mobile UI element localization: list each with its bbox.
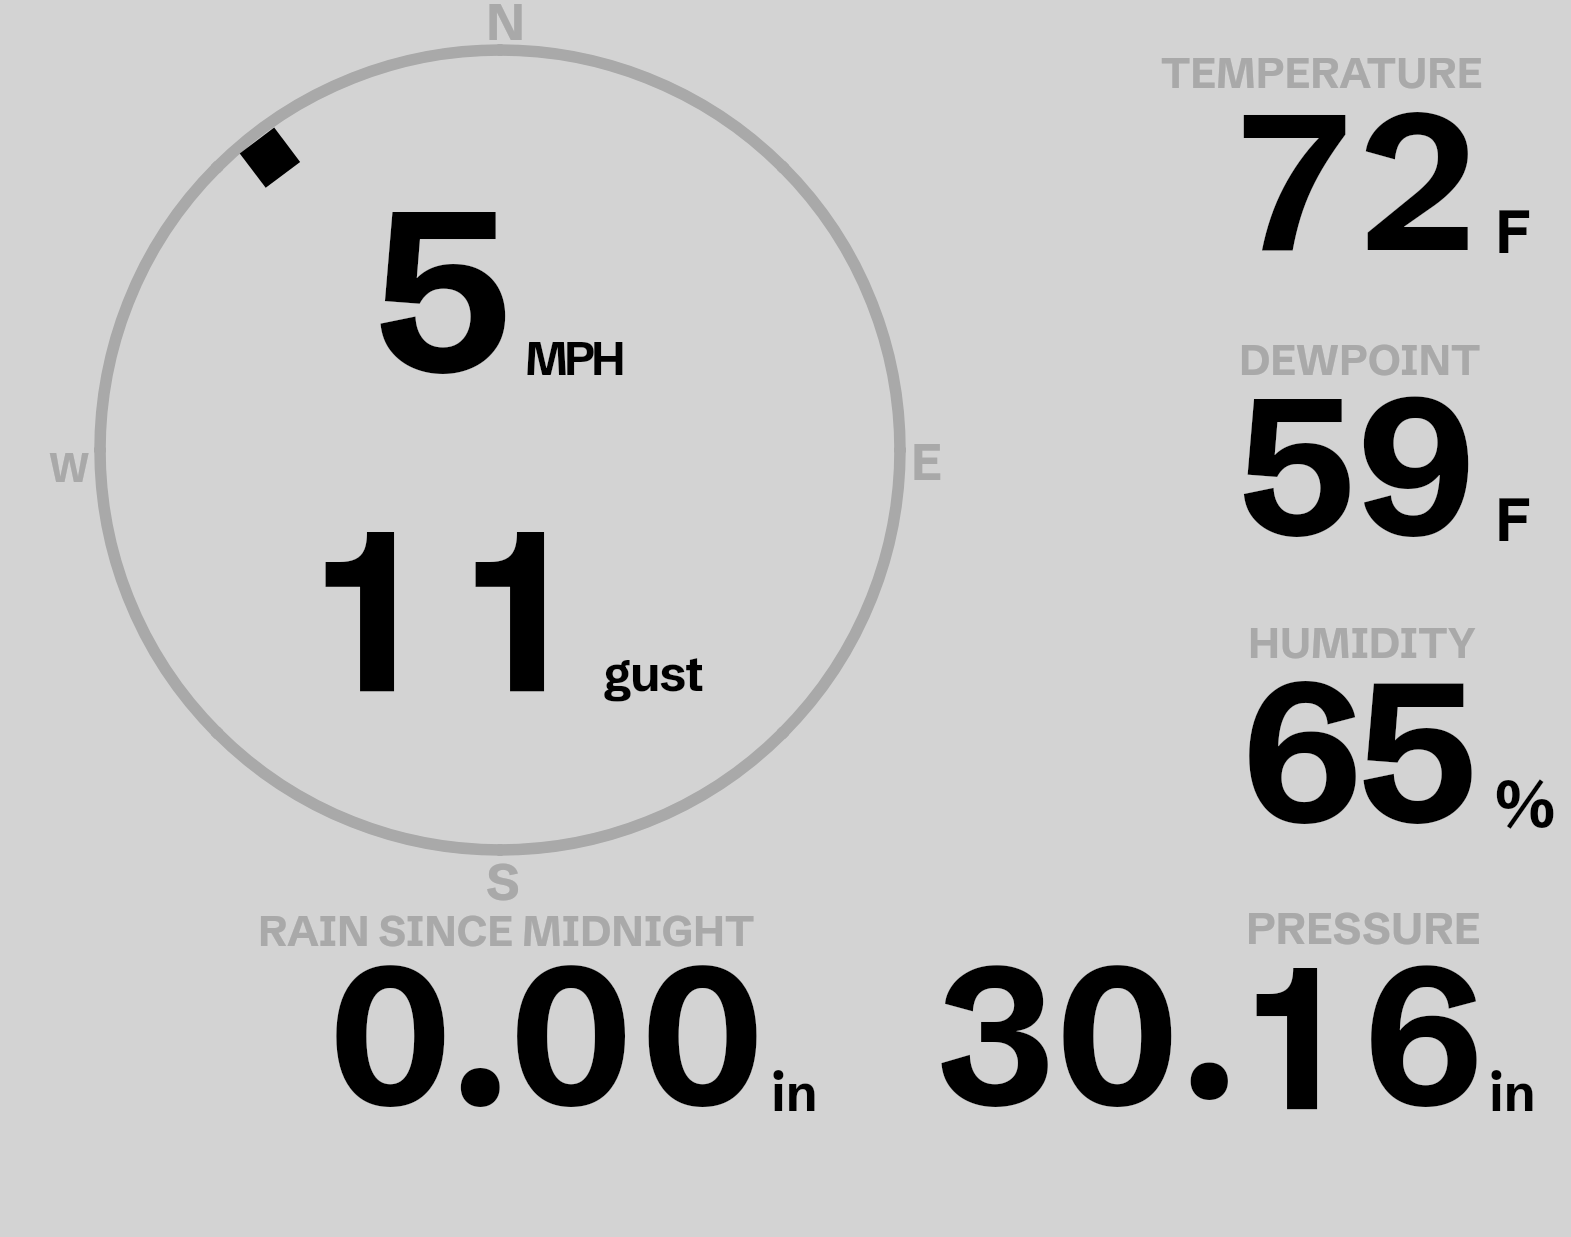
staticText: PRESSURE [1246,901,1481,955]
staticText: E [911,430,942,493]
staticText: F [1495,481,1531,556]
staticText: 1 [467,466,568,757]
staticText: 6 [1364,916,1484,1155]
button[interactable]: Wind 5 MPH, gusting 11, from the north-w… [0,0,1000,920]
staticText: . [1181,916,1238,1146]
staticText: 0 [1056,916,1179,1155]
staticText: gust [603,642,703,704]
staticText: in [771,1060,818,1124]
staticText: 1 [317,466,418,757]
staticText: % [1495,763,1556,844]
button[interactable]: Rain since midnight 0.00 inches [240,896,840,1126]
staticText: 5 [373,150,513,429]
staticText: 0.00 [329,916,769,1155]
staticText: RAIN SINCE MIDNIGHT [258,904,755,956]
staticText: F [1495,193,1531,268]
staticText: 59 [1237,347,1476,584]
staticText: in [1489,1060,1536,1124]
staticText: 3 [937,916,1054,1155]
button[interactable]: Pressure 30.16 inches [900,896,1571,1126]
staticText: S [486,849,520,913]
staticText: 72 [1240,62,1488,299]
staticText: W [49,443,90,492]
staticText: DEWPOINT [1239,333,1481,385]
staticText: 65 [1242,631,1469,873]
button[interactable]: Dewpoint 59 F [1140,316,1571,566]
staticText: HUMIDITY [1248,616,1476,668]
staticText: N [486,0,526,53]
staticText: 1 [1249,910,1338,1167]
staticText: MPH [525,330,622,387]
button[interactable]: Humidity 65 percent [1140,600,1571,850]
staticText: TEMPERATURE [1161,46,1483,98]
button[interactable]: Temperature 72 F [1140,30,1571,280]
